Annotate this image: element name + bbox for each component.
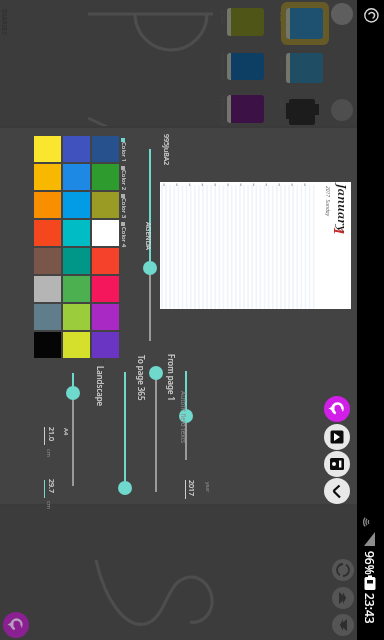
staticText: Landscape (95, 366, 106, 407)
staticText: 96% (362, 551, 378, 575)
button[interactable]: Slider (149, 366, 163, 380)
button[interactable] (286, 53, 323, 83)
button[interactable]: Save (324, 424, 350, 450)
button[interactable] (119, 193, 131, 221)
button[interactable]: Slider (179, 409, 193, 423)
button[interactable] (281, 2, 329, 45)
button[interactable]: Slider (143, 261, 157, 275)
button[interactable]: Print (324, 451, 350, 477)
button[interactable]: Slider (118, 481, 132, 495)
button[interactable] (286, 8, 323, 39)
button[interactable] (227, 95, 264, 123)
staticText: cm (46, 449, 53, 457)
button[interactable] (227, 53, 264, 80)
button[interactable]: Undo (3, 612, 29, 638)
button[interactable] (119, 165, 131, 193)
staticText: 2017 Sunday (324, 186, 331, 217)
button[interactable]: Action (332, 614, 354, 636)
staticText: Color 2 (120, 170, 128, 191)
button[interactable]: Action (331, 99, 353, 121)
button[interactable]: Action (331, 3, 353, 25)
staticText: 995JuBA2 (161, 134, 171, 166)
staticText: 1 (330, 227, 349, 235)
staticText: Color 4 (120, 227, 128, 248)
staticText: Color 3 (120, 198, 128, 219)
staticText: AGENDA (143, 222, 153, 251)
staticText: year (204, 482, 211, 493)
staticText: To page 365 (136, 355, 147, 401)
staticText: January (334, 184, 350, 233)
staticText: cm (46, 501, 53, 509)
button[interactable]: Action (332, 559, 354, 581)
staticText: 2021 (278, 12, 286, 26)
staticText: Color 1 (120, 142, 128, 163)
staticText: A4 (62, 428, 70, 436)
staticText: Autofit field texts (179, 391, 188, 444)
staticText: From page 1 (166, 354, 177, 402)
staticText: 29.7 (46, 479, 56, 493)
button[interactable]: Back (324, 478, 350, 504)
button[interactable]: Redo (324, 396, 350, 422)
staticText: 21.0 (46, 427, 56, 441)
staticText: DIARIES (0, 9, 9, 35)
button[interactable] (96, 359, 106, 405)
staticText: 23:43 (362, 593, 378, 624)
staticText: 2017 (186, 480, 196, 497)
button[interactable] (119, 221, 131, 249)
button[interactable]: Action (332, 587, 354, 609)
button[interactable]: Slider (66, 386, 80, 400)
button[interactable] (119, 137, 131, 165)
button[interactable] (227, 8, 264, 36)
